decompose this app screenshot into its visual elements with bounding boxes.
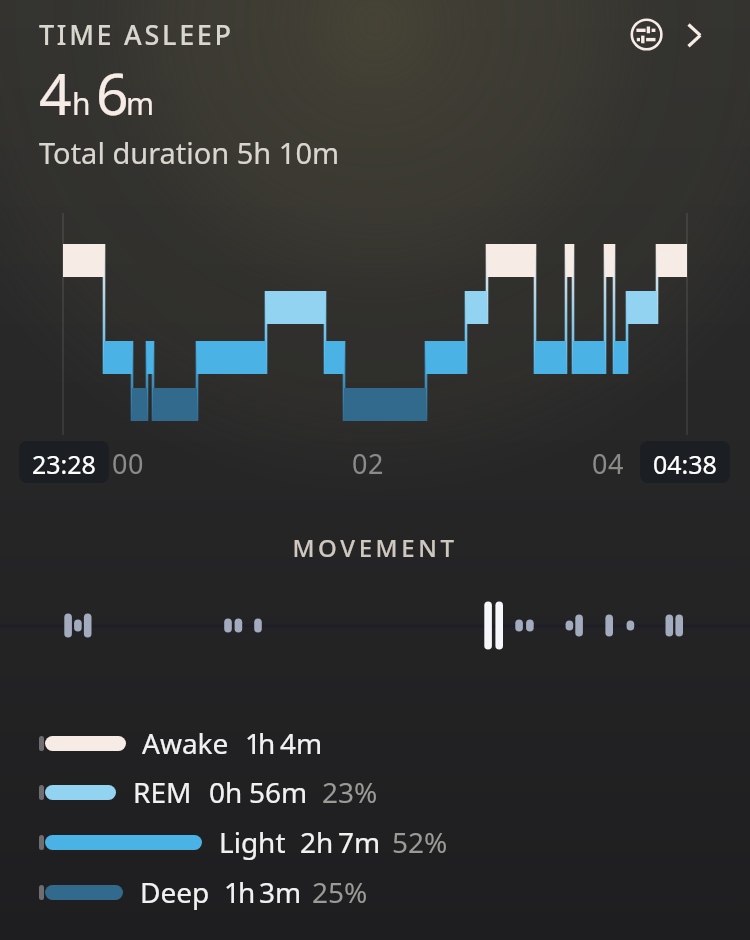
staticText: Deep bbox=[140, 873, 210, 911]
staticText: m bbox=[126, 83, 155, 124]
staticText: 56m bbox=[249, 773, 308, 811]
staticText: 4m bbox=[280, 724, 323, 762]
staticText: 02 bbox=[343, 445, 393, 482]
button[interactable]: 04:38 bbox=[640, 441, 730, 483]
staticText: 04:38 bbox=[653, 447, 717, 481]
button[interactable]: Light bbox=[0, 827, 750, 869]
staticText: 0h bbox=[209, 773, 243, 811]
staticText: 52% bbox=[392, 823, 448, 861]
staticText: 25% bbox=[312, 873, 368, 911]
staticText: TIME ASLEEP bbox=[39, 16, 234, 53]
staticText: Total duration 5h 10m bbox=[39, 133, 340, 172]
staticText: h bbox=[72, 83, 91, 124]
staticText: 6 bbox=[96, 54, 129, 132]
staticText: Light bbox=[219, 823, 286, 861]
staticText: Awake bbox=[142, 724, 229, 762]
staticText: 23% bbox=[322, 773, 378, 811]
staticText: 7m bbox=[338, 823, 381, 861]
button[interactable]: Adjust sleep stages bbox=[624, 12, 669, 57]
staticText: 3m bbox=[259, 873, 302, 911]
staticText: REM bbox=[133, 773, 192, 811]
staticText: 1 bbox=[224, 873, 241, 911]
button[interactable]: Open sleep details bbox=[676, 12, 721, 57]
staticText: h bbox=[238, 873, 256, 911]
button[interactable]: REM bbox=[0, 777, 750, 819]
staticText: 23:28 bbox=[32, 447, 96, 481]
staticText: 2h bbox=[300, 823, 334, 861]
staticText: MOVEMENT bbox=[0, 531, 750, 564]
button[interactable]: 23:28 bbox=[19, 441, 109, 483]
button[interactable]: Deep bbox=[0, 877, 750, 919]
button[interactable]: Awake bbox=[0, 728, 750, 770]
staticText: 04 bbox=[583, 445, 633, 482]
staticText: 00 bbox=[103, 445, 153, 482]
staticText: 4 bbox=[39, 54, 72, 132]
staticText: h bbox=[258, 724, 276, 762]
staticText: 1 bbox=[245, 724, 262, 762]
